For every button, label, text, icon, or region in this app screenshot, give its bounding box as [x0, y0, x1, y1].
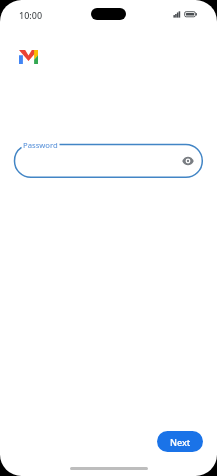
button[interactable]: Show password — [179, 152, 197, 170]
staticText: Password — [23, 140, 58, 150]
staticText: Next — [170, 436, 191, 448]
staticText: 10:00 — [19, 9, 43, 21]
button[interactable]: Password — [13, 143, 204, 179]
button[interactable]: Next — [157, 431, 203, 452]
